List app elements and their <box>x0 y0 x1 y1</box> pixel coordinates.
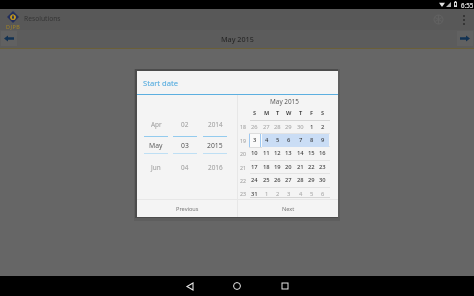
staticText: 4 <box>299 190 303 198</box>
staticText: 6:55 <box>461 1 474 9</box>
button[interactable]: 4 <box>261 133 272 146</box>
button[interactable]: 30 <box>317 173 328 186</box>
staticText: 27 <box>263 123 270 131</box>
button[interactable]: 5 <box>306 187 317 200</box>
staticText: 29 <box>285 123 292 131</box>
staticText: 14 <box>297 149 304 157</box>
staticText: 10 <box>251 149 258 157</box>
staticText: 6 <box>321 190 325 198</box>
staticText: May 2015 <box>221 34 254 44</box>
staticText: 27 <box>285 176 292 184</box>
staticText: 28 <box>274 123 281 131</box>
button[interactable]: 2 <box>317 120 328 133</box>
button[interactable]: Next month <box>457 31 473 46</box>
staticText: 3 <box>287 190 291 198</box>
button[interactable]: 13 <box>283 146 294 159</box>
staticText: 2015 <box>207 141 223 150</box>
staticText: Resolutions <box>24 14 61 23</box>
staticText: 16 <box>319 149 326 157</box>
button[interactable]: 18 <box>261 160 272 173</box>
staticText: Start date <box>143 78 178 88</box>
staticText: 21 <box>297 163 304 171</box>
button[interactable]: 31 <box>249 187 260 200</box>
button[interactable]: 21 <box>295 160 306 173</box>
staticText: 29 <box>308 176 315 184</box>
button[interactable]: 23 <box>317 160 328 173</box>
button[interactable]: 27 <box>261 120 272 133</box>
staticText: S <box>253 109 257 117</box>
button[interactable]: 26 <box>272 173 283 186</box>
button[interactable]: 6 <box>283 133 294 146</box>
staticText: F <box>310 109 314 117</box>
button[interactable]: More options <box>456 12 472 28</box>
button[interactable]: 28 <box>272 120 283 133</box>
staticText: 24 <box>251 176 258 184</box>
button[interactable]: 19 <box>272 160 283 173</box>
button[interactable]: 1 <box>306 120 317 133</box>
button[interactable]: 29 <box>283 120 294 133</box>
staticText: 2 <box>276 190 280 198</box>
button[interactable]: 3 <box>249 133 260 146</box>
staticText: 30 <box>297 123 304 131</box>
button[interactable]: 8 <box>306 133 317 146</box>
staticText: 25 <box>263 176 270 184</box>
staticText: 19 <box>274 163 281 171</box>
button[interactable]: 16 <box>317 146 328 159</box>
staticText: DJPB <box>6 23 21 30</box>
staticText: 04 <box>181 163 189 172</box>
button[interactable]: 25 <box>261 173 272 186</box>
staticText: 02 <box>181 120 189 129</box>
button[interactable]: 30 <box>295 120 306 133</box>
staticText: M <box>264 109 270 117</box>
button[interactable]: 6 <box>317 187 328 200</box>
staticText: 22 <box>308 163 315 171</box>
button[interactable]: 12 <box>272 146 283 159</box>
button[interactable]: 15 <box>306 146 317 159</box>
button[interactable]: Next <box>238 200 338 217</box>
button[interactable]: 5 <box>272 133 283 146</box>
staticText: 23 <box>319 163 326 171</box>
button[interactable]: 11 <box>261 146 272 159</box>
button[interactable]: 4 <box>295 187 306 200</box>
button[interactable]: 20 <box>283 160 294 173</box>
staticText: 23 <box>240 190 246 197</box>
button[interactable]: 14 <box>295 146 306 159</box>
staticText: 2014 <box>208 120 223 129</box>
staticText: 15 <box>308 149 315 157</box>
staticText: T <box>276 109 280 117</box>
staticText: 8 <box>310 136 314 144</box>
button[interactable]: 27 <box>283 173 294 186</box>
staticText: 21 <box>240 164 246 171</box>
button[interactable]: Home <box>215 276 259 296</box>
staticText: S <box>321 109 325 117</box>
staticText: 7 <box>299 136 303 144</box>
staticText: 9 <box>321 136 325 144</box>
staticText: 1 <box>310 123 314 131</box>
button[interactable]: 1 <box>261 187 272 200</box>
button[interactable]: 28 <box>295 173 306 186</box>
staticText: 22 <box>240 177 246 184</box>
button[interactable]: Previous <box>137 200 237 217</box>
button[interactable]: 29 <box>306 173 317 186</box>
button[interactable]: 9 <box>317 133 328 146</box>
button[interactable]: 7 <box>295 133 306 146</box>
button[interactable]: 22 <box>306 160 317 173</box>
staticText: 20 <box>285 163 292 171</box>
staticText: 1 <box>265 190 269 198</box>
button[interactable]: 3 <box>283 187 294 200</box>
button[interactable]: 24 <box>249 173 260 186</box>
staticText: 5 <box>310 190 314 198</box>
staticText: May <box>149 141 163 150</box>
button[interactable]: Recents <box>263 276 307 296</box>
staticText: 5 <box>276 136 280 144</box>
staticText: 2016 <box>208 163 223 172</box>
button[interactable]: Previous month <box>1 31 17 46</box>
button[interactable]: Back <box>168 276 212 296</box>
staticText: T <box>299 109 303 117</box>
staticText: 2 <box>321 123 325 131</box>
button[interactable]: 17 <box>249 160 260 173</box>
button[interactable]: 26 <box>249 120 260 133</box>
button[interactable]: 10 <box>249 146 260 159</box>
button[interactable]: 2 <box>272 187 283 200</box>
